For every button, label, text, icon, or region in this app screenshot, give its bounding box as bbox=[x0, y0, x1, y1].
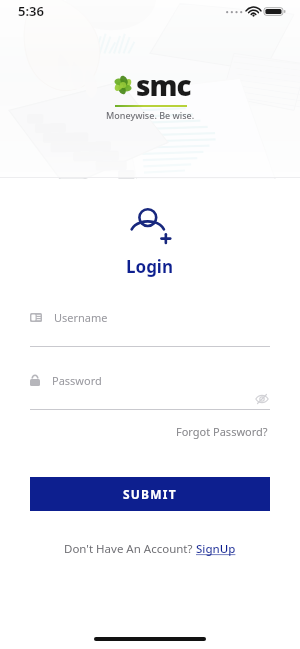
staticText: Username bbox=[54, 310, 108, 325]
staticText: smc bbox=[136, 66, 191, 104]
staticText: Password bbox=[52, 373, 102, 388]
button[interactable]: Username bbox=[30, 308, 270, 347]
button[interactable]: Password bbox=[30, 371, 270, 410]
staticText: Login bbox=[126, 255, 174, 278]
staticText: Forgot Password? bbox=[176, 424, 268, 439]
staticText: SignUp bbox=[196, 541, 236, 557]
other: Username bbox=[30, 313, 42, 322]
button[interactable]: Don't Have An Account? bbox=[56, 537, 244, 561]
staticText: Moneywise. Be wise. bbox=[106, 109, 195, 121]
button[interactable]: Show password bbox=[254, 391, 270, 407]
staticText: SUBMIT bbox=[123, 486, 177, 502]
other: Login user bbox=[128, 205, 172, 247]
button[interactable]: SUBMIT bbox=[30, 477, 270, 511]
staticText: 5:36 bbox=[18, 2, 44, 20]
staticText: Don't Have An Account? bbox=[64, 541, 196, 557]
other: Password bbox=[30, 374, 40, 386]
button[interactable]: Forgot Password? bbox=[174, 420, 270, 443]
